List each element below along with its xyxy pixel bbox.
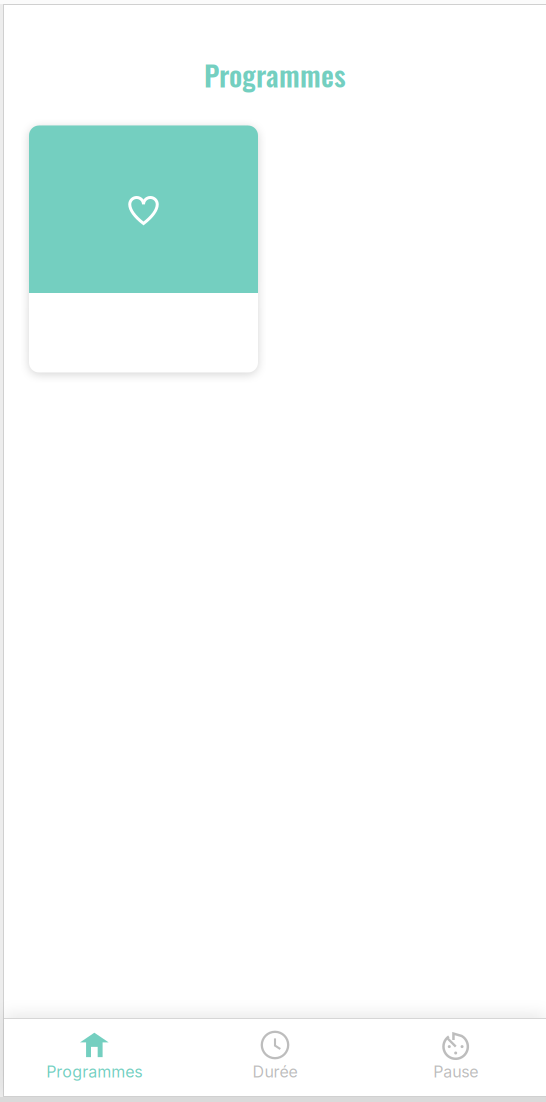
staticText: Pause [433, 1062, 478, 1081]
button[interactable]: Programme favori [29, 125, 258, 372]
button[interactable]: Pause [365, 1018, 546, 1096]
staticText: Programmes [204, 54, 346, 95]
button[interactable]: Durée [185, 1018, 365, 1096]
staticText: Programmes [46, 1062, 142, 1081]
staticText: Durée [252, 1062, 297, 1081]
button[interactable]: Programmes [4, 1018, 185, 1096]
